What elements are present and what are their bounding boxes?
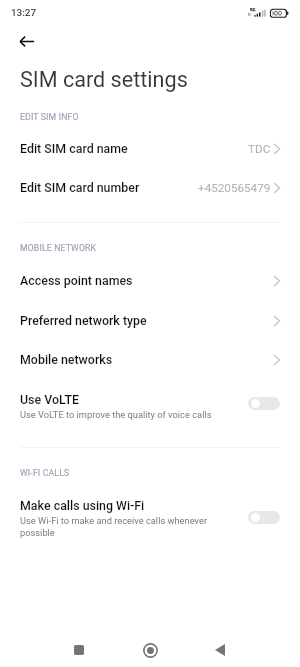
button[interactable]: Navigate up: [3, 17, 51, 65]
staticText: MOBILE NETWORK: [20, 243, 300, 253]
staticText: Use Wi-Fi to make and receive calls when…: [20, 515, 250, 526]
button[interactable]: Recent apps: [55, 626, 103, 667]
button[interactable]: Preferred network type: [0, 300, 300, 340]
staticText: possible: [20, 527, 250, 538]
staticText: SIM card settings: [20, 66, 300, 92]
staticText: EDIT SIM INFO: [20, 112, 300, 122]
button[interactable]: Make calls using Wi-Fi: [0, 492, 300, 542]
button[interactable]: Access point names: [0, 260, 300, 300]
staticText: +4520565479: [198, 182, 271, 195]
button[interactable]: Back: [196, 626, 244, 667]
button[interactable]: Edit SIM card number: [0, 167, 300, 207]
button[interactable]: Use VoLTE: [0, 384, 300, 424]
button[interactable]: Edit SIM card name: [0, 128, 300, 168]
staticText: WI-FI CALLS: [20, 468, 300, 478]
button[interactable]: Home: [126, 626, 174, 667]
staticText: Edit SIM card number: [20, 180, 300, 195]
staticText: 13:27: [11, 7, 300, 19]
staticText: TDC: [248, 143, 271, 156]
staticText: Mobile networks: [20, 352, 300, 367]
staticText: Preferred network type: [20, 313, 300, 328]
staticText: Make calls using Wi-Fi: [20, 498, 300, 513]
staticText: Edit SIM card name: [20, 141, 300, 156]
button[interactable]: Mobile networks: [0, 339, 300, 379]
staticText: Use VoLTE to improve the quality of voic…: [20, 409, 250, 420]
staticText: Use VoLTE: [20, 392, 300, 407]
staticText: Access point names: [20, 273, 300, 288]
